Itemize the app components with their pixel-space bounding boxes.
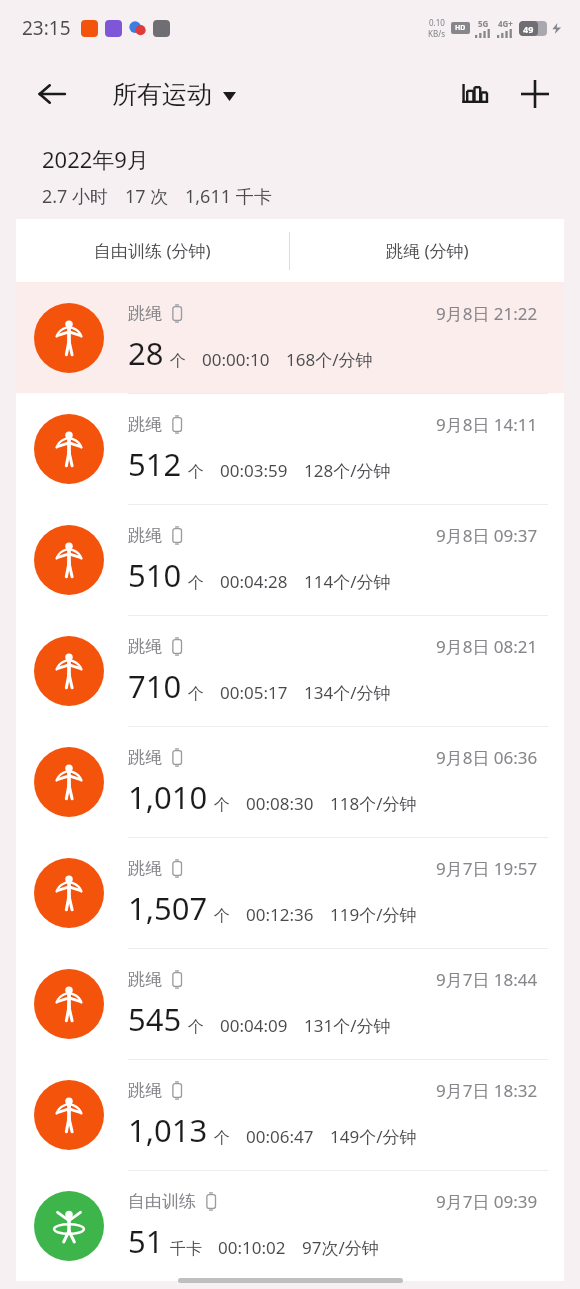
staticText: 545 <box>128 998 182 1040</box>
staticText: 134个/分钟 <box>304 681 391 704</box>
staticText: 128个/分钟 <box>304 459 391 482</box>
staticText: 跳绳 <box>128 303 162 324</box>
staticText: 9月8日 08:21 <box>436 635 538 658</box>
staticText: 跳绳 <box>128 1080 162 1101</box>
staticText: 个 <box>170 351 186 371</box>
staticText: 00:10:02 <box>218 1236 286 1259</box>
staticText: 9月7日 18:44 <box>436 968 538 991</box>
staticText: 00:04:09 <box>220 1014 288 1037</box>
staticText: 跳绳 <box>128 414 162 435</box>
staticText: 119个/分钟 <box>330 903 417 926</box>
button[interactable]: 自由训练 (分钟) <box>16 219 289 282</box>
staticText: 9月7日 18:32 <box>436 1079 538 1102</box>
button[interactable]: 跳绳 <box>16 615 564 726</box>
staticText: 1,507 <box>128 887 208 929</box>
staticText: 710 <box>128 665 182 707</box>
staticText: 自由训练 <box>128 1191 196 1212</box>
staticText: 所有运动 <box>112 79 212 110</box>
staticText: 自由训练 (分钟) <box>94 239 211 262</box>
staticText: 51 <box>128 1220 164 1262</box>
button[interactable]: Statistics <box>452 71 498 117</box>
staticText: 跳绳 <box>128 525 162 546</box>
staticText: 00:00:10 <box>202 348 270 371</box>
staticText: 个 <box>188 573 204 593</box>
button[interactable]: 跳绳 (分钟) <box>290 219 564 282</box>
staticText: 个 <box>214 1128 230 1148</box>
staticText: 9月8日 21:22 <box>436 302 538 325</box>
staticText: 5G <box>478 18 489 29</box>
button[interactable]: Back <box>30 72 74 116</box>
staticText: HD <box>455 23 466 33</box>
staticText: 23:15 <box>22 15 71 41</box>
staticText: 0.10 <box>429 17 445 28</box>
staticText: 9月8日 09:37 <box>436 524 538 547</box>
staticText: 个 <box>188 1017 204 1037</box>
staticText: 512 <box>128 443 182 485</box>
staticText: 97次/分钟 <box>302 1236 379 1259</box>
staticText: 114个/分钟 <box>304 570 391 593</box>
staticText: 149个/分钟 <box>330 1125 417 1148</box>
button[interactable]: 自由训练 <box>16 1170 564 1281</box>
staticText: 个 <box>214 795 230 815</box>
button[interactable]: Add <box>512 71 558 117</box>
staticText: 9月8日 14:11 <box>436 413 538 436</box>
button[interactable]: 跳绳 <box>16 948 564 1059</box>
staticText: 2022年9月 <box>42 144 149 174</box>
staticText: 9月8日 06:36 <box>436 746 538 769</box>
staticText: 00:03:59 <box>220 459 288 482</box>
staticText: 9月7日 19:57 <box>436 857 538 880</box>
staticText: 17 次 <box>125 184 169 209</box>
button[interactable]: 跳绳 <box>16 393 564 504</box>
button[interactable]: 跳绳 <box>16 837 564 948</box>
staticText: 个 <box>188 684 204 704</box>
button[interactable]: 跳绳 <box>16 1059 564 1170</box>
staticText: 00:05:17 <box>220 681 288 704</box>
staticText: 千卡 <box>170 1239 202 1259</box>
button[interactable]: 跳绳 <box>16 726 564 837</box>
button[interactable]: 跳绳 <box>16 282 564 393</box>
staticText: 168个/分钟 <box>286 348 373 371</box>
staticText: 跳绳 (分钟) <box>386 239 469 262</box>
staticText: 1,611 千卡 <box>185 184 272 209</box>
staticText: 4G+ <box>498 18 513 29</box>
staticText: 28 <box>128 332 164 374</box>
staticText: 个 <box>214 906 230 926</box>
staticText: 跳绳 <box>128 636 162 657</box>
staticText: 510 <box>128 554 182 596</box>
staticText: 跳绳 <box>128 969 162 990</box>
staticText: 49 <box>523 23 534 35</box>
staticText: 1,013 <box>128 1109 208 1151</box>
staticText: 跳绳 <box>128 858 162 879</box>
staticText: 跳绳 <box>128 747 162 768</box>
staticText: 00:06:47 <box>246 1125 314 1148</box>
staticText: KB/s <box>428 28 445 39</box>
staticText: 9月7日 09:39 <box>436 1190 538 1213</box>
button[interactable]: 跳绳 <box>16 504 564 615</box>
button[interactable]: 所有运动 <box>112 79 236 110</box>
staticText: 00:08:30 <box>246 792 314 815</box>
staticText: 1,010 <box>128 776 208 818</box>
staticText: 个 <box>188 462 204 482</box>
staticText: 00:12:36 <box>246 903 314 926</box>
staticText: 2.7 小时 <box>42 184 109 209</box>
staticText: 00:04:28 <box>220 570 288 593</box>
staticText: 118个/分钟 <box>330 792 417 815</box>
staticText: 131个/分钟 <box>304 1014 391 1037</box>
